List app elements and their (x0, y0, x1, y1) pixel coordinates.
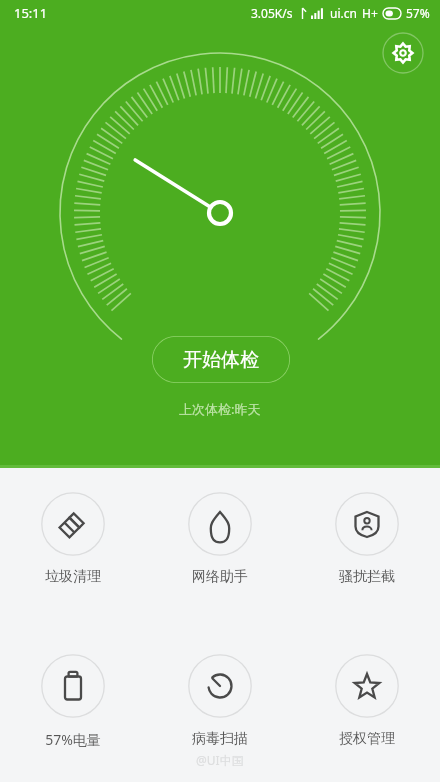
button[interactable]: 骚扰拦截 (293, 492, 440, 586)
staticText: 授权管理 (339, 730, 395, 748)
staticText: 骚扰拦截 (339, 568, 395, 586)
staticText: 15:11 (14, 4, 48, 22)
staticText: 垃圾清理 (45, 568, 101, 586)
button[interactable]: 网络助手 (146, 492, 293, 586)
button[interactable]: 垃圾清理 (0, 492, 146, 586)
button[interactable]: 病毒扫描 (146, 654, 293, 748)
staticText: 57% (406, 5, 430, 21)
button[interactable]: 57%电量 (0, 654, 146, 749)
staticText: 57%电量 (45, 730, 101, 749)
staticText: 病毒扫描 (192, 730, 248, 748)
staticText: 开始体检 (183, 348, 259, 372)
staticText: 上次体检:昨天 (179, 400, 261, 418)
staticText: ui.cn (330, 5, 357, 21)
staticText: H+ (362, 5, 378, 21)
staticText: @UI中国 (196, 752, 244, 768)
button[interactable]: 开始体检 (152, 336, 290, 383)
button[interactable]: 授权管理 (293, 654, 440, 748)
staticText: 3.05K/s (251, 5, 293, 21)
button[interactable]: Settings (381, 31, 425, 75)
staticText: 网络助手 (192, 568, 248, 586)
